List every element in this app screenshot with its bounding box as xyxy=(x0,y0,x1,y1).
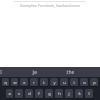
staticText: s xyxy=(18,91,20,96)
button[interactable]: y xyxy=(50,78,58,86)
staticText: p xyxy=(93,80,96,85)
button[interactable]: I xyxy=(0,67,2,77)
button[interactable]: e xyxy=(20,78,28,86)
staticText: f xyxy=(38,91,40,96)
button[interactable]: r xyxy=(30,78,38,86)
staticText: k xyxy=(78,91,81,96)
button[interactable]: f xyxy=(35,89,43,98)
staticText: I xyxy=(0,69,2,75)
staticText: w xyxy=(13,80,17,85)
staticText: i xyxy=(73,80,75,85)
staticText: u xyxy=(63,80,66,85)
button[interactable]: the xyxy=(67,67,74,77)
button[interactable]: je xyxy=(33,67,37,77)
button[interactable]: a xyxy=(6,89,13,98)
button[interactable]: i xyxy=(70,78,78,86)
staticText: e xyxy=(23,80,26,85)
staticText: t xyxy=(43,80,45,85)
staticText: d xyxy=(28,91,31,96)
staticText: o xyxy=(83,80,86,85)
staticText: g xyxy=(48,91,51,96)
staticText: l xyxy=(88,91,90,96)
button[interactable]: j xyxy=(65,89,73,98)
staticText: y xyxy=(53,80,56,85)
button[interactable]: k xyxy=(75,89,83,98)
button[interactable]: g xyxy=(45,89,53,98)
button[interactable]: u xyxy=(60,78,68,86)
staticText: j xyxy=(68,91,70,96)
staticText: the xyxy=(67,69,74,75)
staticText: je xyxy=(33,69,37,75)
button[interactable]: h xyxy=(55,89,63,98)
button[interactable]: p xyxy=(90,78,98,86)
button[interactable]: o xyxy=(80,78,88,86)
button[interactable]: l xyxy=(85,89,93,98)
staticText: h xyxy=(58,91,61,96)
button[interactable]: w xyxy=(11,78,18,86)
staticText: q xyxy=(4,80,7,85)
button[interactable]: s xyxy=(15,89,23,98)
staticText: a xyxy=(8,91,11,96)
button[interactable]: d xyxy=(25,89,33,98)
button[interactable]: q xyxy=(2,78,9,86)
staticText: r xyxy=(33,80,35,85)
button[interactable]: t xyxy=(40,78,48,86)
staticText: Exemples: Facebook, facebook.com xyxy=(20,3,80,8)
